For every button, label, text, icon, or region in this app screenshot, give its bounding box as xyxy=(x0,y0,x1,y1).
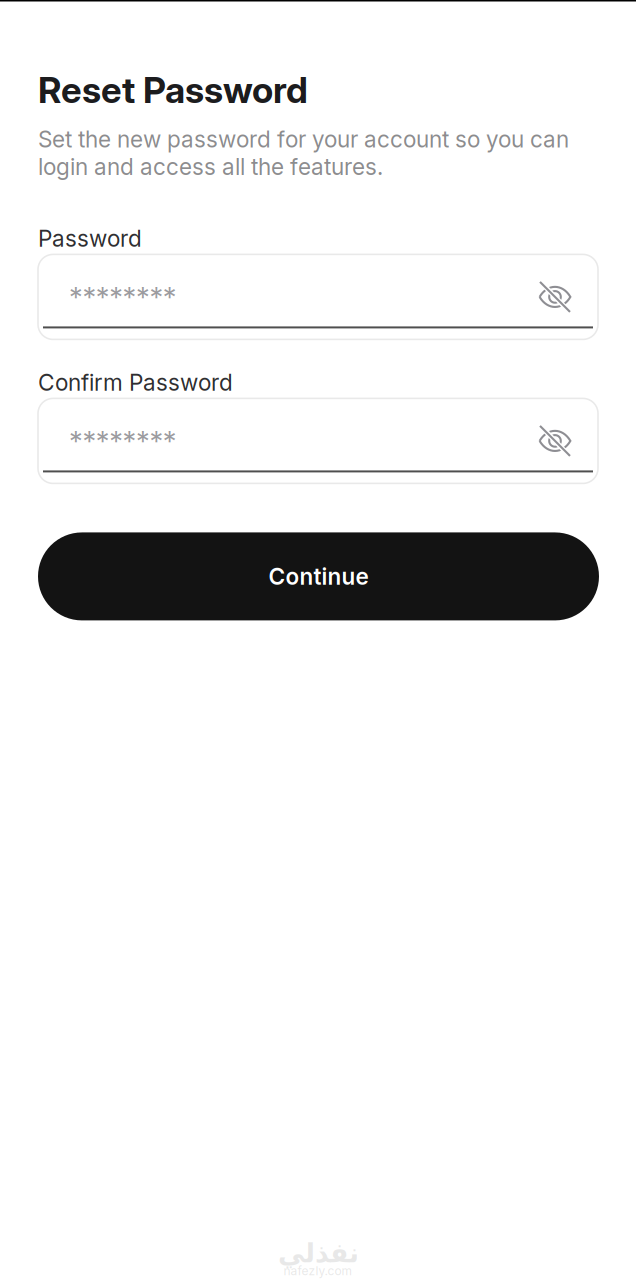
staticText: nafezly.com xyxy=(283,1264,352,1278)
staticText: Confirm Password xyxy=(38,369,233,396)
button[interactable]: Password xyxy=(38,254,598,339)
staticText: ******** xyxy=(69,424,177,458)
staticText: نفذلي xyxy=(277,1237,358,1268)
button[interactable]: Confirm Password xyxy=(38,398,598,483)
staticText: Set the new password for your account so… xyxy=(38,126,569,180)
staticText: Continue xyxy=(268,563,368,590)
staticText: Reset Password xyxy=(38,68,308,112)
button[interactable]: Show Confirm Password xyxy=(531,417,579,465)
button[interactable]: Show Password xyxy=(531,273,579,321)
staticText: ******** xyxy=(69,280,177,314)
button[interactable]: Continue xyxy=(38,532,599,620)
staticText: Password xyxy=(38,225,142,252)
